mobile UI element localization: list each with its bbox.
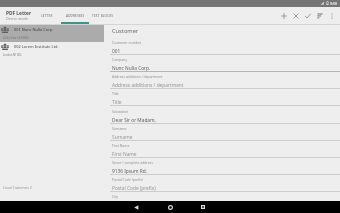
button[interactable]: Street / complete address xyxy=(104,160,340,177)
staticText: Nunc Nulla Corp. xyxy=(112,65,151,72)
button[interactable]: Title xyxy=(104,91,340,108)
button[interactable]: 001 Nunc Nulla Corp. xyxy=(0,25,104,42)
staticText: Company xyxy=(112,57,128,62)
staticText: ADDRESSES xyxy=(66,14,85,18)
staticText: Demo mode xyxy=(6,16,29,21)
staticText: Title xyxy=(112,99,122,106)
staticText: Postal Code (prefix) xyxy=(112,185,156,192)
button[interactable]: Discard xyxy=(290,7,302,24)
button[interactable]: Address additions / department xyxy=(104,74,340,91)
staticText: TEXT BLOCKS xyxy=(92,14,114,18)
staticText: City xyxy=(112,194,118,199)
button[interactable]: More options xyxy=(326,7,338,24)
button[interactable]: Add xyxy=(278,7,290,24)
button[interactable]: Recents xyxy=(192,201,214,213)
staticText: First Name xyxy=(112,143,130,148)
button[interactable]: Company xyxy=(104,57,340,74)
staticText: Address additions / department xyxy=(112,74,163,79)
button[interactable]: Customer number xyxy=(104,40,340,57)
staticText: Customer xyxy=(112,27,139,35)
staticText: 9:50 xyxy=(330,1,338,6)
button[interactable]: First Name xyxy=(104,143,340,160)
staticText: Count Customers 2 xyxy=(3,186,32,190)
staticText: LETTER xyxy=(41,14,53,18)
staticText: London N1 6DL xyxy=(3,53,22,57)
button[interactable]: Postal Code (prefix) xyxy=(104,177,340,194)
staticText: 9136 Ipsum Rd. xyxy=(112,168,148,175)
staticText: 002 Lorem Institute Ltd. xyxy=(14,44,59,49)
staticText: Valley View CA 96840 xyxy=(3,36,29,40)
button[interactable]: Save xyxy=(302,7,314,24)
staticText: Surname xyxy=(112,134,133,141)
staticText: Surname xyxy=(112,126,127,131)
button[interactable]: Salutation xyxy=(104,109,340,126)
button[interactable]: Home xyxy=(159,201,181,213)
staticText: Street / complete address xyxy=(112,160,153,165)
staticText: Title xyxy=(112,91,119,96)
staticText: PDF Letter xyxy=(6,10,32,17)
staticText: Salutation xyxy=(112,109,129,114)
button[interactable]: ADDRESSES xyxy=(61,7,89,24)
button[interactable]: Surname xyxy=(104,126,340,143)
button[interactable]: TEXT BLOCKS xyxy=(89,7,117,24)
staticText: 001 xyxy=(112,48,121,55)
button[interactable]: Sort xyxy=(314,7,326,24)
staticText: First Name xyxy=(112,151,137,158)
button[interactable]: 002 Lorem Institute Ltd. xyxy=(0,42,104,59)
button[interactable]: LETTER xyxy=(33,7,61,24)
staticText: Postal Code (prefix) xyxy=(112,177,143,182)
staticText: Dear Sir or Madam, xyxy=(112,117,156,124)
staticText: Customer number xyxy=(112,40,142,45)
staticText: 001 Nunc Nulla Corp. xyxy=(14,27,54,32)
staticText: Address additions / department xyxy=(112,82,184,89)
button[interactable]: Back xyxy=(125,201,147,213)
